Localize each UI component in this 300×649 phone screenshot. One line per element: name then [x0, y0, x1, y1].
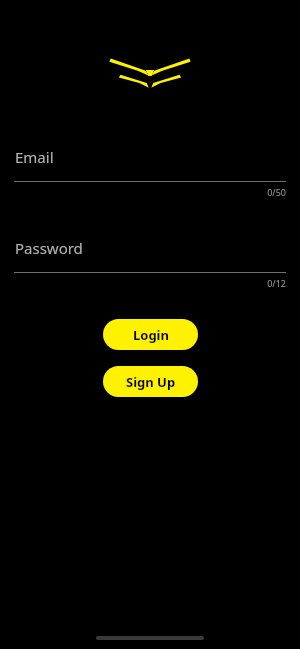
- button[interactable]: Login: [103, 319, 198, 350]
- staticText: Login: [133, 326, 169, 344]
- staticText: Email: [15, 147, 54, 167]
- other: App logo: [109, 55, 191, 89]
- staticText: Password: [15, 238, 83, 258]
- staticText: 0/12: [0, 277, 286, 289]
- staticText: Sign Up: [126, 373, 176, 391]
- button[interactable]: Sign Up: [103, 366, 198, 397]
- staticText: 0/50: [0, 186, 286, 198]
